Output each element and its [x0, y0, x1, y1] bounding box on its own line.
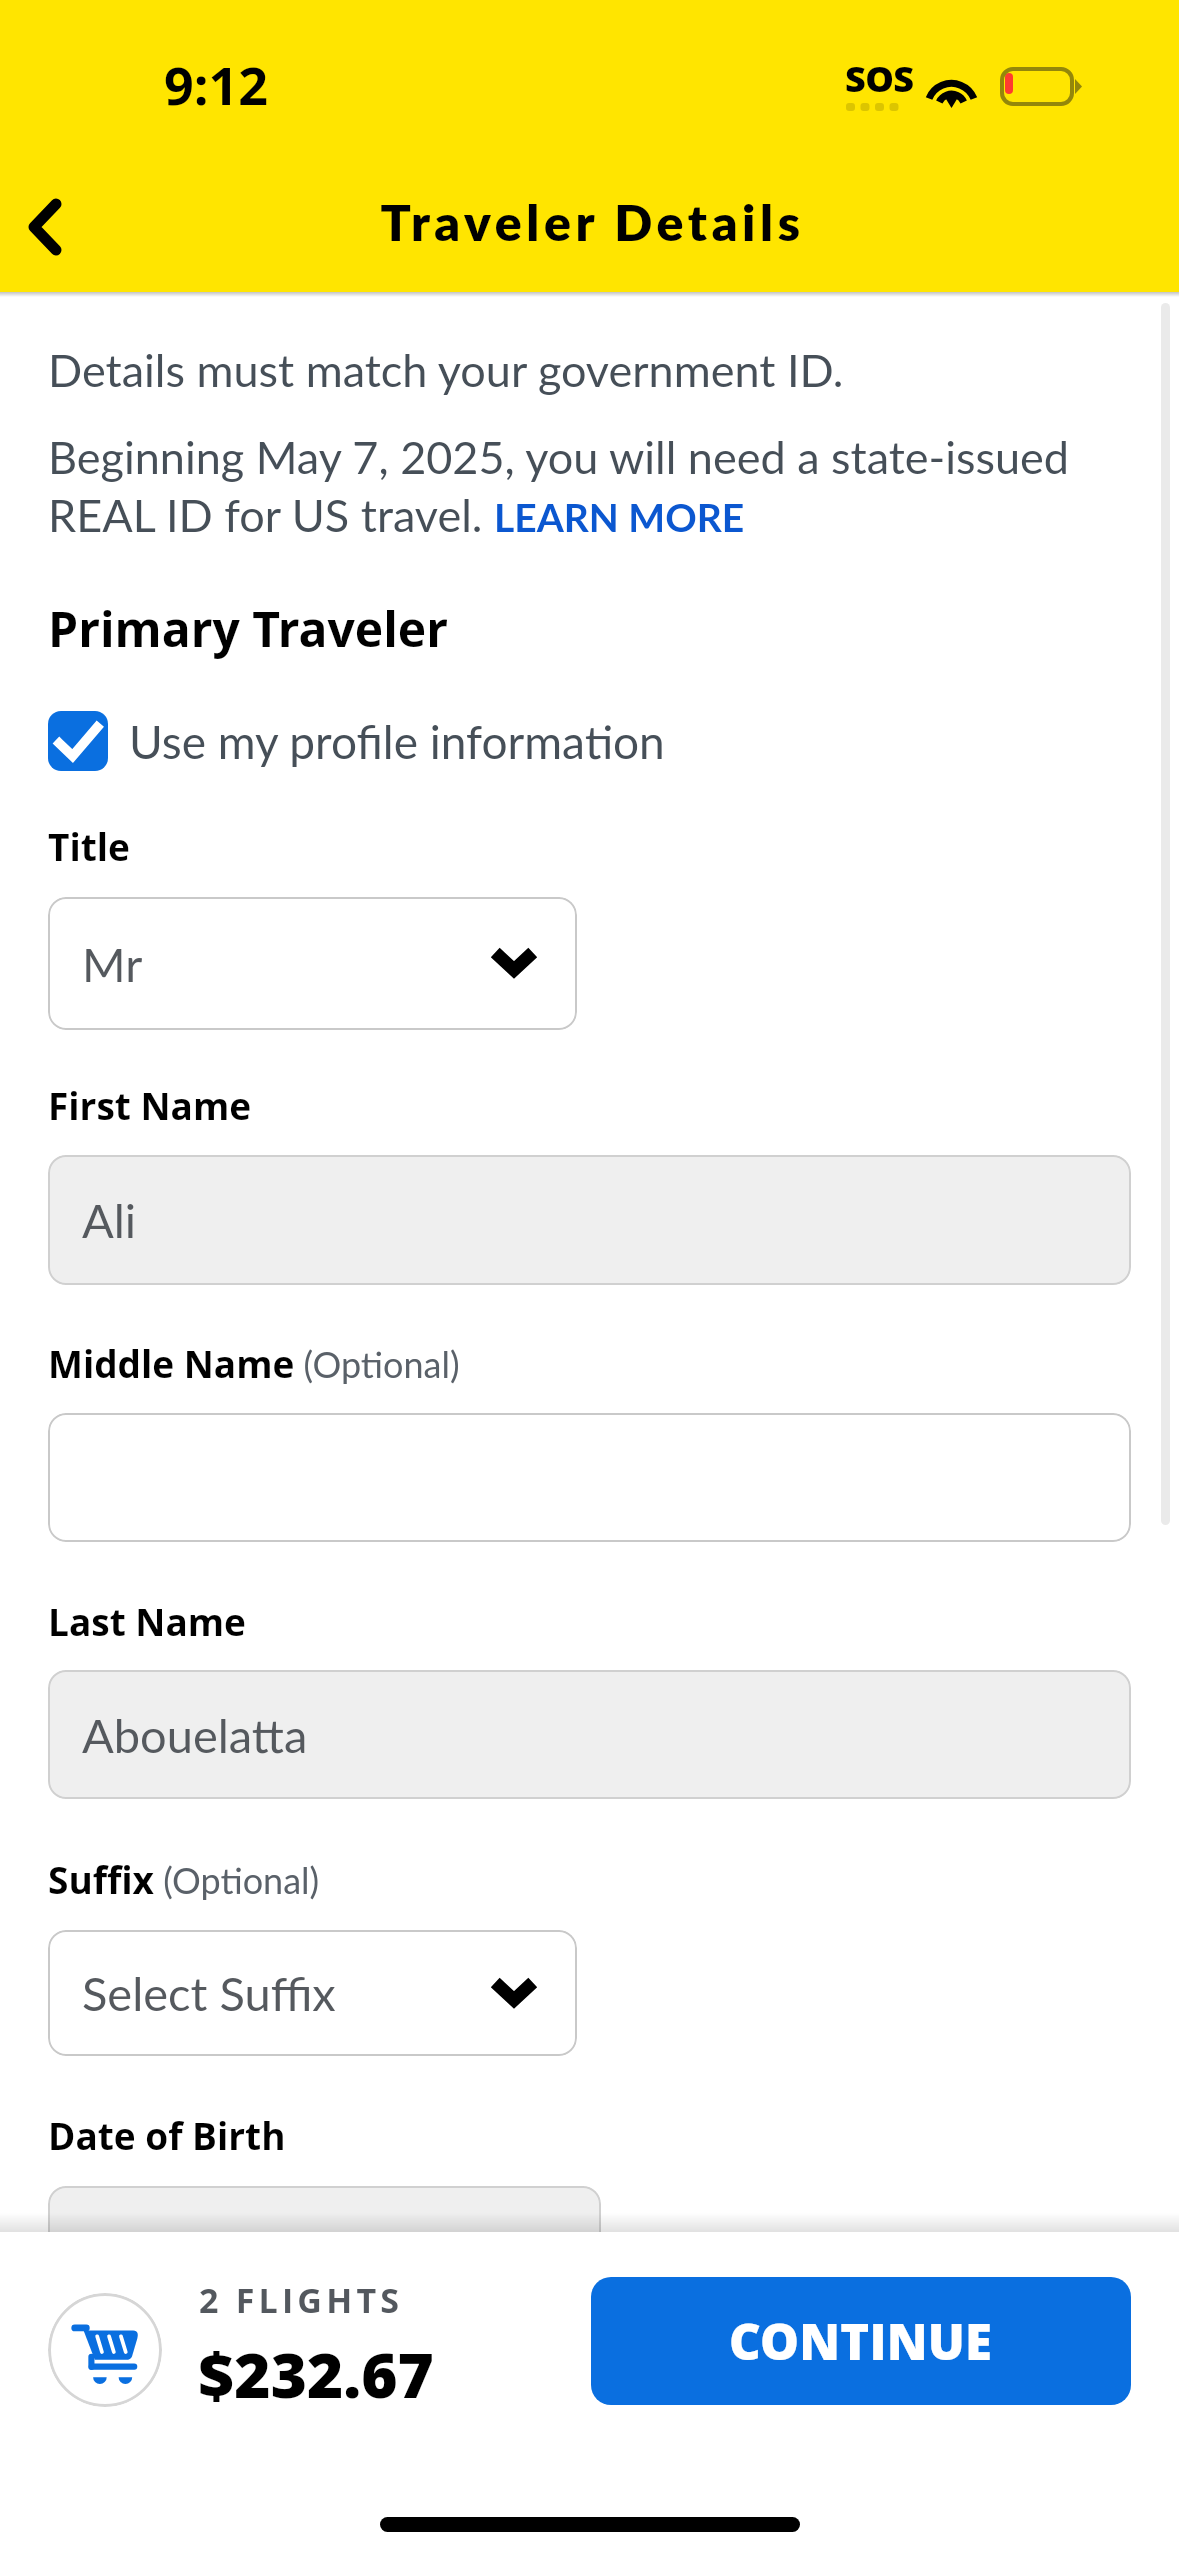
staticText: Suffix (Optional) — [48, 1854, 320, 1904]
button[interactable]: Ali — [48, 1155, 1131, 1285]
staticText: Mr — [82, 936, 143, 992]
button[interactable]: Select Suffix — [48, 1930, 577, 2056]
button[interactable]: Mr — [48, 897, 577, 1030]
staticText: CONTINUE — [729, 2308, 993, 2375]
button[interactable]: Cart — [48, 2293, 162, 2407]
button[interactable]: Use my profile information — [48, 705, 665, 777]
staticText: Traveler Details — [3, 192, 1179, 252]
staticText: Ali — [82, 1192, 137, 1248]
staticText: Use my profile information — [129, 714, 665, 769]
staticText: Primary Traveler — [48, 596, 448, 661]
staticText: Abouelatta — [82, 1707, 308, 1763]
staticText: Middle Name (Optional) — [48, 1338, 460, 1388]
staticText: Last Name — [48, 1596, 246, 1646]
button[interactable]: CONTINUE — [591, 2277, 1131, 2405]
staticText: Details must match your government ID. — [48, 343, 844, 397]
staticText: 2 FLIGHTS — [199, 2277, 404, 2323]
button[interactable]: Abouelatta — [48, 1670, 1131, 1799]
staticText: $232.67 — [198, 2332, 434, 2416]
staticText: Select Suffix — [82, 1965, 336, 2021]
button[interactable] — [48, 1413, 1131, 1542]
staticText: 9:12 — [164, 49, 268, 120]
staticText: Beginning May 7, 2025, you will need a s… — [48, 430, 1078, 541]
staticText: First Name — [48, 1080, 252, 1130]
staticText: SOS — [845, 54, 914, 103]
staticText: Date of Birth — [48, 2110, 286, 2160]
button[interactable]: Back — [0, 172, 110, 287]
button[interactable] — [48, 2186, 601, 2316]
staticText: Title — [48, 821, 130, 871]
